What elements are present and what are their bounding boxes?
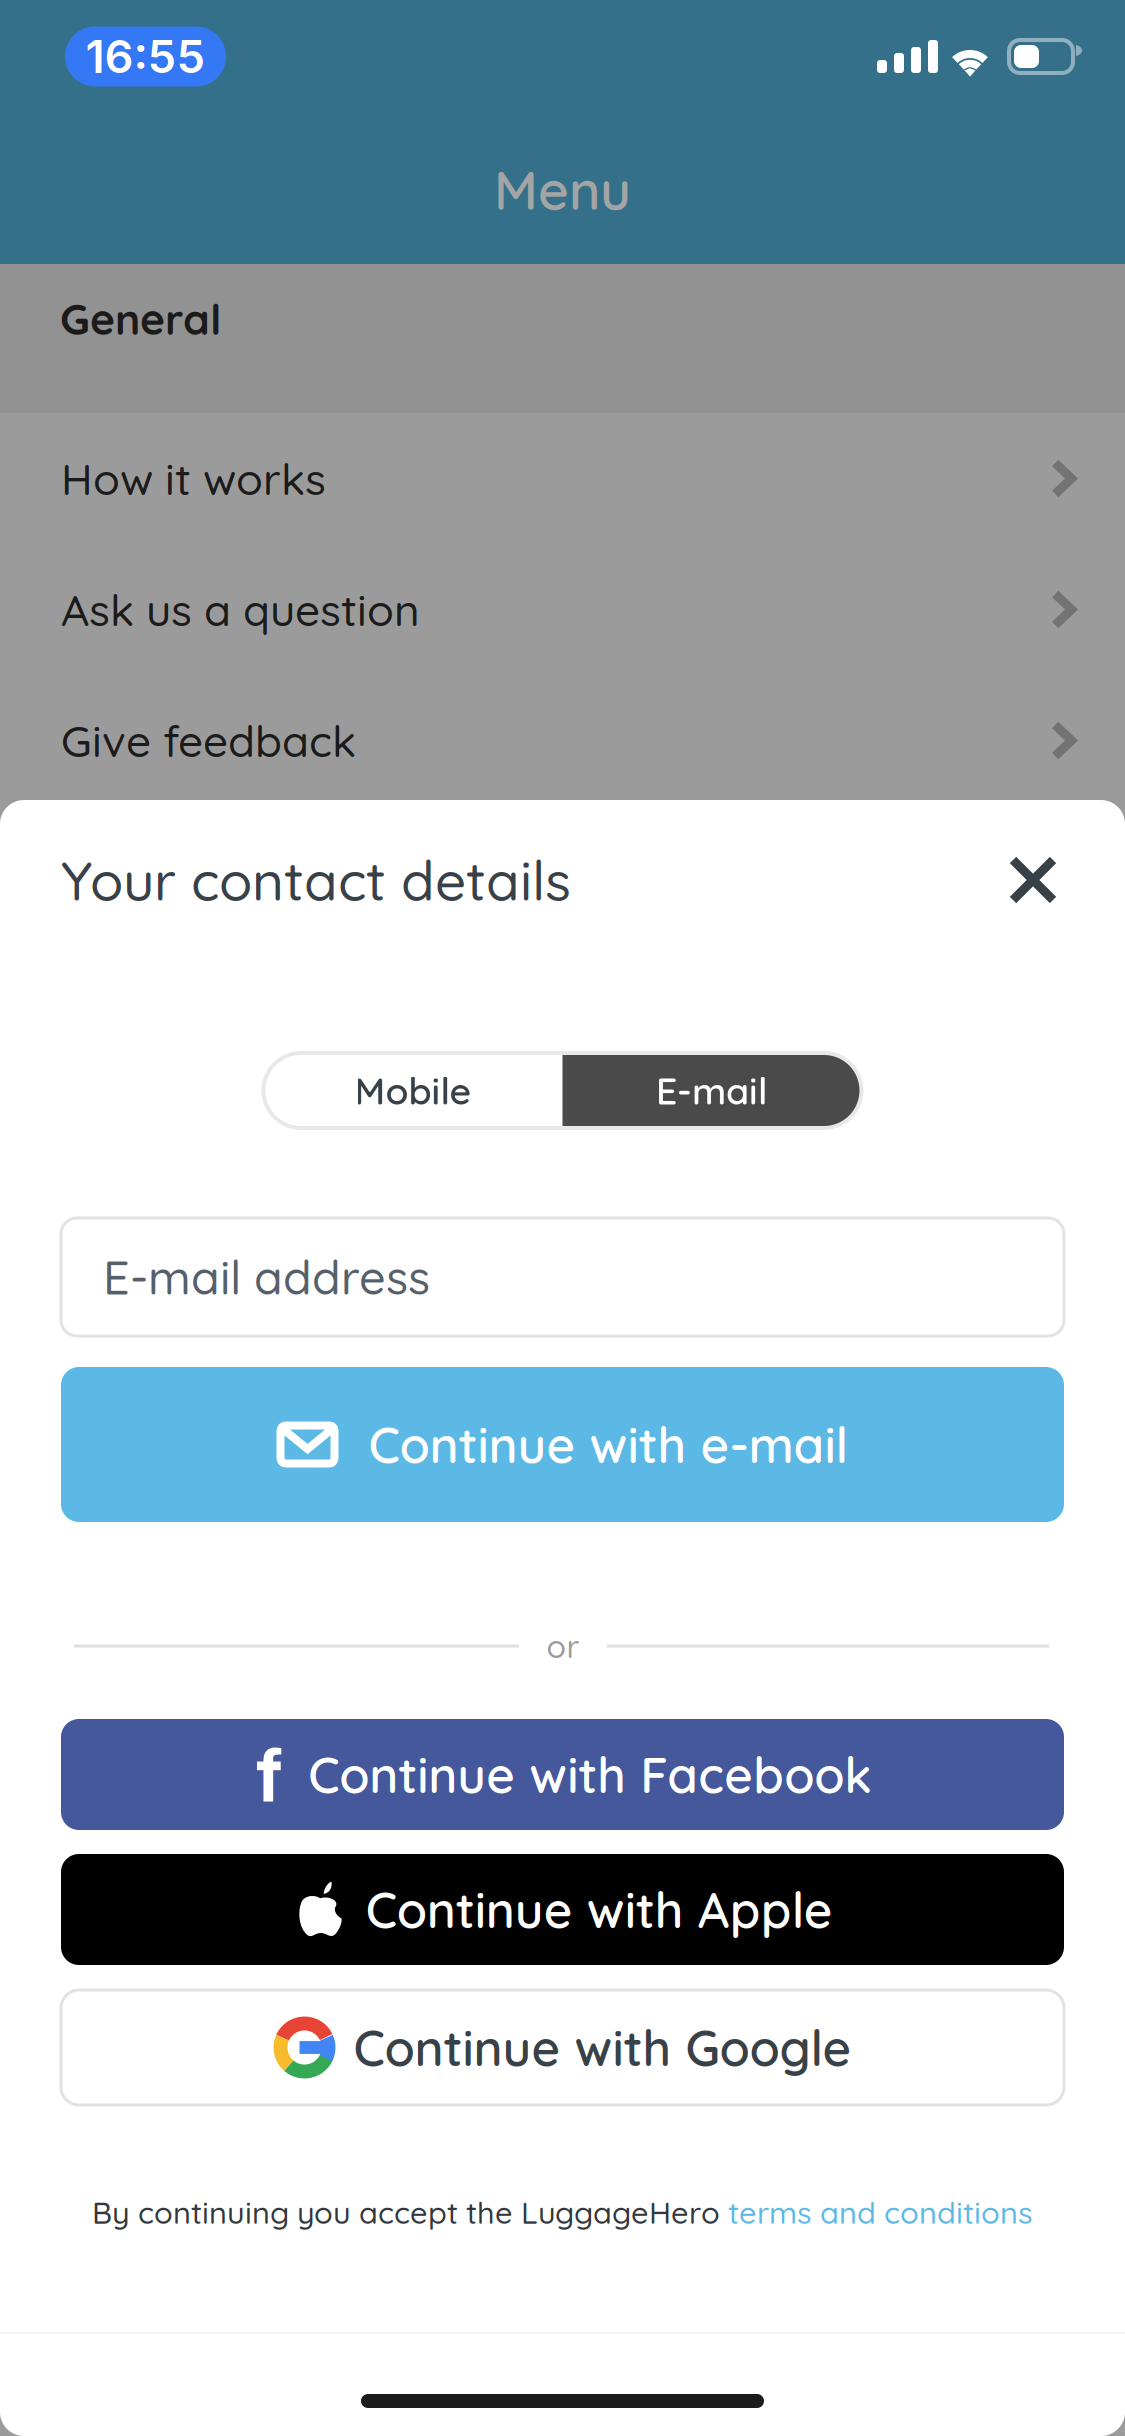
button[interactable]: Give feedback (0, 675, 1125, 806)
staticText: or (546, 1626, 579, 1666)
button[interactable]: Continue with Apple (61, 1854, 1064, 1965)
staticText: terms and conditions (728, 2193, 1033, 2231)
staticText: Your contact details (61, 846, 571, 914)
button[interactable]: Close (985, 832, 1081, 928)
staticText: Ask us a question (61, 582, 420, 637)
staticText: Continue with Apple (366, 1879, 833, 1940)
button[interactable]: Continue with e-mail (0, 1367, 1125, 1522)
staticText: E-mail address (103, 1248, 430, 1306)
staticText: Mobile (354, 1067, 471, 1114)
button[interactable]: Continue with Facebook (61, 1719, 1064, 1830)
staticText: Continue with e-mail (368, 1414, 848, 1475)
staticText: Continue with Facebook (308, 1744, 872, 1805)
button[interactable]: How it works (0, 413, 1125, 544)
button[interactable]: Mobile (263, 1053, 562, 1128)
staticText: How it works (61, 451, 326, 506)
staticText: Menu (494, 156, 631, 223)
staticText: 16:55 (85, 29, 205, 84)
staticText: General (60, 292, 222, 345)
button[interactable]: Continue with Google (61, 1990, 1064, 2105)
staticText: Continue with Google (353, 2017, 851, 2078)
staticText: By continuing you accept the LuggageHero (92, 2193, 728, 2231)
staticText: E-mail (656, 1067, 768, 1114)
staticText: Give feedback (61, 713, 356, 768)
button[interactable]: E-mail (562, 1053, 861, 1128)
button[interactable]: Ask us a question (0, 544, 1125, 675)
